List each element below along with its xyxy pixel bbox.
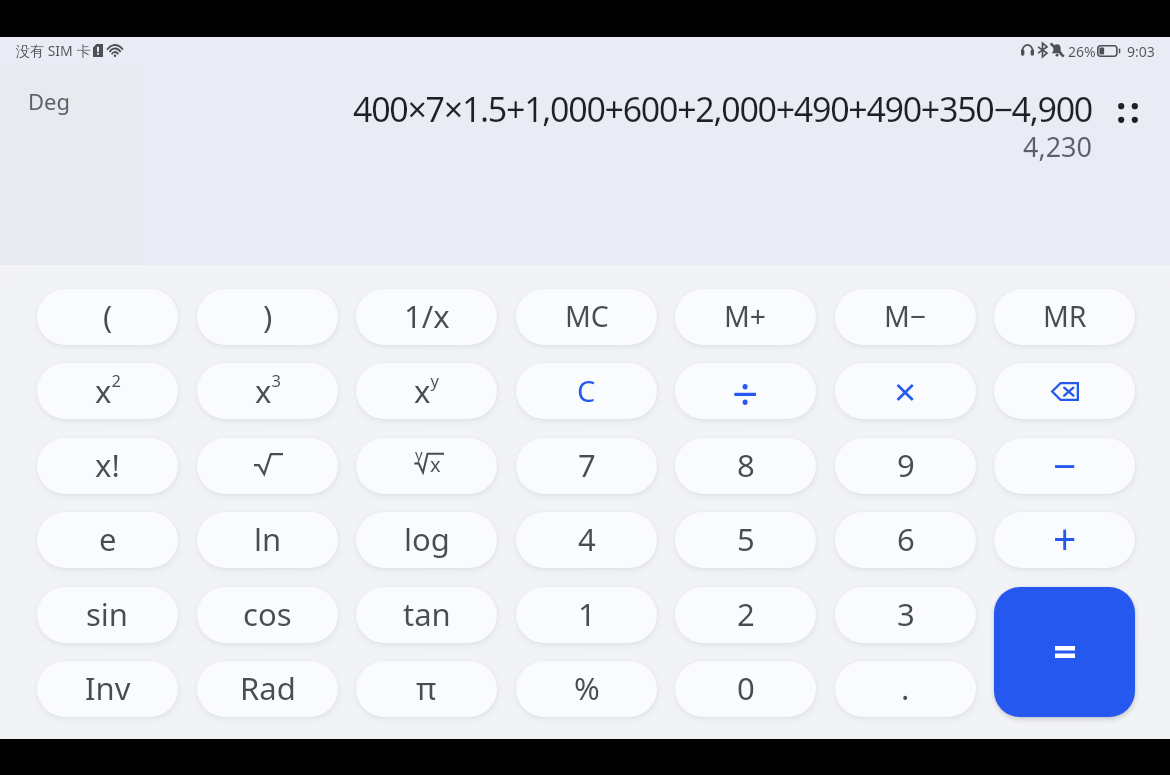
button[interactable]: 5 [675,512,816,568]
button[interactable]: 3 [835,587,976,643]
staticText: M+ [724,297,767,336]
staticText: cos [243,593,292,635]
staticText: 7 [578,444,596,486]
button[interactable]: × [835,363,976,419]
staticText: 9:03 [1127,42,1155,61]
staticText: Deg [28,86,70,116]
staticText: xy [414,369,439,412]
staticText: 4,230 [1023,128,1093,165]
staticText: Inv [85,667,131,709]
button[interactable]: tan [356,587,497,643]
staticText: % [574,667,600,709]
staticText: x3 [255,369,281,412]
staticText: ) [263,295,273,337]
button[interactable]: 4 [516,512,657,568]
staticText: 3 [897,593,915,635]
button[interactable]: log [356,512,497,568]
button[interactable] [197,438,338,494]
staticText: 6 [897,518,915,560]
staticText: ( [103,295,113,337]
button[interactable]: x2 [37,363,178,419]
button[interactable]: y-th root of x [356,438,497,494]
staticText: 2 [737,593,755,635]
button[interactable]: M+ [675,289,816,345]
button[interactable]: 8 [675,438,816,494]
staticText: M− [884,297,927,336]
button[interactable]: 1 [516,587,657,643]
staticText: 400×7×1.5+1,000+600+2,000+490+490+350−4,… [353,86,1093,132]
other: y-th root of x [414,448,444,478]
staticText: log [404,518,450,560]
button[interactable]: C [516,363,657,419]
staticText: tan [403,593,451,635]
button[interactable]: x! [37,438,178,494]
button[interactable]: + [994,512,1135,568]
staticText: y [415,444,423,464]
button[interactable]: 2 [675,587,816,643]
staticText: 1 [578,593,596,635]
staticText: × [894,364,917,417]
staticText: 9 [897,444,915,486]
button[interactable]: MC [516,289,657,345]
button[interactable]: cos [197,587,338,643]
staticText: − [1053,438,1077,493]
staticText: + [1053,512,1077,567]
button[interactable]: History [1110,95,1146,131]
button[interactable]: x3 [197,363,338,419]
button[interactable]: Backspace [994,363,1135,419]
button[interactable]: % [516,661,657,717]
button[interactable]: 7 [516,438,657,494]
staticText: 0 [737,667,755,709]
staticText: 没有 SIM 卡 [16,41,91,60]
button[interactable]: . [835,661,976,717]
other: Backspace [1051,382,1079,401]
staticText: 26% [1068,42,1096,61]
button[interactable]: ) [197,289,338,345]
staticText: 8 [737,444,755,486]
staticText: MC [565,297,609,336]
button[interactable]: Inv [37,661,178,717]
button[interactable]: e [37,512,178,568]
staticText: sin [86,593,129,635]
staticText: ÷ [732,363,759,418]
staticText: C [577,371,596,410]
staticText: π [416,667,437,709]
button[interactable]: 0 [675,661,816,717]
staticText: 5 [737,518,755,560]
staticText: x2 [95,369,121,412]
button[interactable]: sin [37,587,178,643]
button[interactable]: 1/x [356,289,497,345]
button[interactable]: ( [37,289,178,345]
button[interactable]: Rad [197,661,338,717]
staticText: 4 [578,518,596,560]
staticText: e [99,518,117,560]
button[interactable]: M− [835,289,976,345]
staticText: . [901,667,910,709]
button[interactable]: xy [356,363,497,419]
button[interactable]: ln [197,512,338,568]
button[interactable]: − [994,438,1135,494]
staticText: ln [254,518,282,560]
staticText: MR [1043,297,1087,336]
staticText: x [430,451,441,478]
button[interactable]: ÷ [675,363,816,419]
button[interactable]: 6 [835,512,976,568]
staticText: Rad [240,667,296,709]
button[interactable]: 9 [835,438,976,494]
button[interactable]: π [356,661,497,717]
button[interactable]: MR [994,289,1135,345]
staticText: 1/x [404,295,450,337]
staticText: x! [95,444,120,486]
button[interactable]: Equals [994,587,1135,717]
